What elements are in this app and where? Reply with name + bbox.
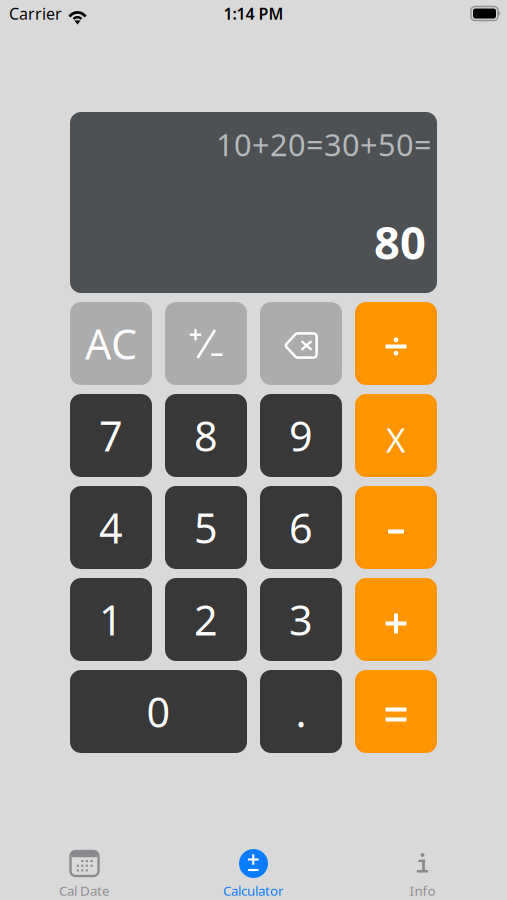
- button[interactable]: Divide: [355, 302, 437, 385]
- staticText: 8: [194, 408, 218, 463]
- button[interactable]: 6: [260, 486, 342, 569]
- staticText: 6: [289, 500, 313, 555]
- button[interactable]: Calculator: [169, 839, 338, 900]
- button[interactable]: Subtract: [355, 486, 437, 569]
- staticText: 3: [289, 592, 313, 647]
- staticText: Cal Date: [59, 882, 110, 899]
- button[interactable]: Equals: [355, 670, 437, 753]
- button[interactable]: 5: [165, 486, 247, 569]
- staticText: 9: [289, 408, 313, 463]
- button[interactable]: 4: [70, 486, 152, 569]
- staticText: AC: [85, 316, 137, 371]
- button[interactable]: 7: [70, 394, 152, 477]
- button[interactable]: Add: [355, 578, 437, 661]
- button[interactable]: Delete: [260, 302, 342, 385]
- button[interactable]: 1: [70, 578, 152, 661]
- staticText: 4: [99, 500, 123, 555]
- button[interactable]: 2: [165, 578, 247, 661]
- button[interactable]: Multiply: [355, 394, 437, 477]
- staticText: 2: [194, 592, 218, 647]
- staticText: 80: [374, 212, 426, 272]
- staticText: 1: [99, 592, 123, 647]
- button[interactable]: Toggle sign: [165, 302, 247, 385]
- staticText: Calculator: [223, 882, 284, 899]
- button[interactable]: 0: [70, 670, 247, 753]
- staticText: 7: [99, 408, 123, 463]
- staticText: 0: [146, 684, 170, 739]
- button[interactable]: 3: [260, 578, 342, 661]
- staticText: .: [295, 684, 306, 739]
- staticText: 5: [194, 500, 218, 555]
- button[interactable]: 8: [165, 394, 247, 477]
- staticText: X: [386, 417, 406, 462]
- staticText: Carrier: [9, 3, 62, 24]
- staticText: 10+20=30+50=: [216, 124, 432, 165]
- staticText: Info: [409, 882, 435, 899]
- staticText: 1:14 PM: [223, 3, 283, 24]
- button[interactable]: Cal Date: [0, 839, 169, 900]
- button[interactable]: Info: [338, 839, 507, 900]
- button[interactable]: Decimal point: [260, 670, 342, 753]
- button[interactable]: All Clear: [70, 302, 152, 385]
- button[interactable]: 9: [260, 394, 342, 477]
